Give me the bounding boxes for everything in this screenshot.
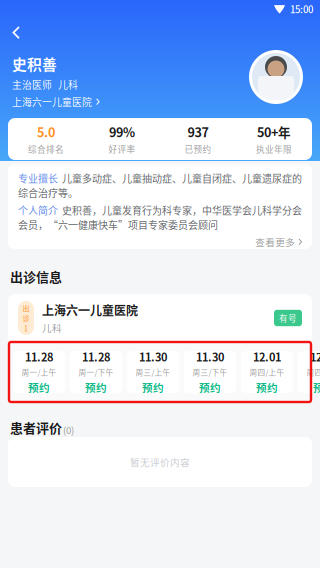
staticText: 5.0 xyxy=(37,123,55,141)
staticText: 综合排名 xyxy=(28,143,64,155)
staticText: 主治医师 儿科 xyxy=(12,77,78,92)
staticText: 上海六一儿童医院 xyxy=(42,301,138,319)
staticText: 预约 xyxy=(199,380,221,395)
staticText: 已预约 xyxy=(184,143,211,155)
staticText: 1 xyxy=(24,323,28,333)
staticText: 周一/上午 xyxy=(21,367,56,378)
staticText: 诊 xyxy=(22,313,29,323)
button[interactable]: 11.28 xyxy=(13,351,65,393)
button[interactable]: 查看更多 xyxy=(18,235,302,249)
staticText: 50+年 xyxy=(257,123,291,141)
staticText: 12.01 xyxy=(310,349,320,365)
staticText: 史积善 xyxy=(12,53,57,74)
button[interactable]: 12.01 xyxy=(241,351,293,393)
staticText: 预约 xyxy=(28,380,50,395)
staticText: 预约 xyxy=(256,380,278,395)
staticText: 有号 xyxy=(279,312,297,324)
button[interactable]: Back xyxy=(0,21,32,44)
staticText: 周三/上午 xyxy=(135,367,170,378)
staticText: 出诊信息 xyxy=(10,267,62,286)
staticText: 预约 xyxy=(313,380,320,395)
staticText: 预约 xyxy=(142,380,164,395)
staticText: 暂无评价内容 xyxy=(130,455,190,469)
staticText: 99% xyxy=(109,123,135,141)
staticText: 预约 xyxy=(85,380,107,395)
staticText: 周三/下午 xyxy=(192,367,227,378)
staticText: 个人简介 史积善，儿童发育行为科专家，中华医学会儿科学分会会员，“六一健康快车”… xyxy=(18,203,302,232)
staticText: 执业年限 xyxy=(256,143,292,155)
staticText: 11.30 xyxy=(139,349,167,365)
staticText: 上海六一儿童医院 xyxy=(12,95,92,109)
staticText: 查看更多 xyxy=(255,235,295,249)
staticText: 11.28 xyxy=(82,349,110,365)
staticText: 好评率 xyxy=(108,143,135,155)
staticText: 11.30 xyxy=(196,349,224,365)
staticText: 12.01 xyxy=(253,349,281,365)
button[interactable]: 11.30 xyxy=(184,351,236,393)
button[interactable]: 12.01 xyxy=(298,351,320,393)
staticText: 患者评价 xyxy=(10,418,62,437)
staticText: 专业擅长 儿童多动症、儿童抽动症、儿童自闭症、儿童遗尿症的综合治疗等。 xyxy=(18,171,302,200)
staticText: 周四/上午 xyxy=(249,367,284,378)
staticText: 出 xyxy=(22,303,29,313)
staticText: 11.28 xyxy=(25,349,53,365)
staticText: 15:00 xyxy=(290,2,313,16)
staticText: (0) xyxy=(63,423,74,437)
button[interactable]: 11.28 xyxy=(70,351,122,393)
button[interactable]: 上海六一儿童医院 xyxy=(12,95,100,109)
staticText: 周一/下午 xyxy=(78,367,113,378)
staticText: 周四/下午 xyxy=(306,367,320,378)
button[interactable]: 11.30 xyxy=(127,351,179,393)
staticText: 儿科 xyxy=(42,321,62,335)
staticText: 937 xyxy=(187,123,208,141)
